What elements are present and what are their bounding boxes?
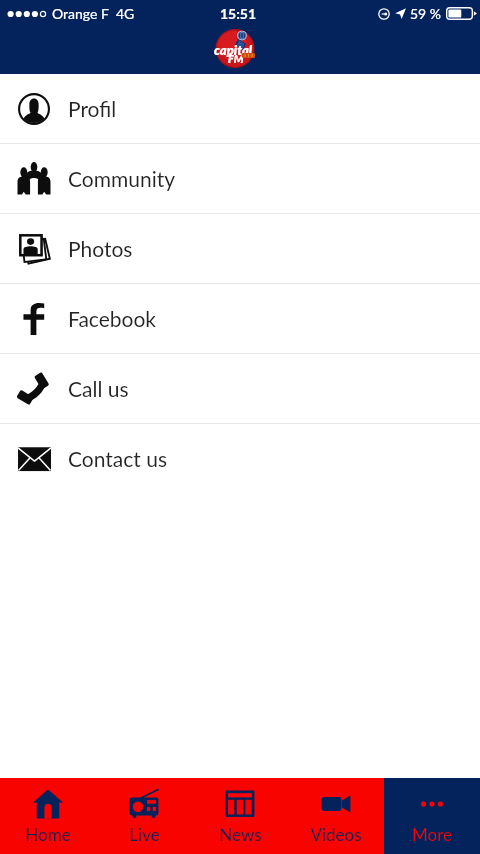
- staticText: Profil: [68, 96, 117, 121]
- button[interactable]: Videos: [288, 778, 384, 854]
- staticText: Contact us: [68, 446, 167, 471]
- button[interactable]: Call us: [0, 354, 480, 423]
- button[interactable]: More: [384, 778, 480, 854]
- staticText: Photos: [68, 236, 133, 261]
- button[interactable]: Home: [0, 778, 96, 854]
- button[interactable]: Live: [96, 778, 192, 854]
- button[interactable]: Profil: [0, 74, 480, 143]
- staticText: Community: [68, 166, 176, 191]
- button[interactable]: Facebook: [0, 284, 480, 353]
- staticText: More: [412, 824, 452, 844]
- button[interactable]: Contact us: [0, 424, 480, 493]
- staticText: Home: [25, 824, 71, 844]
- staticText: capital: [214, 42, 253, 58]
- staticText: Videos: [310, 824, 362, 844]
- button[interactable]: Community: [0, 144, 480, 213]
- staticText: Orange F: [52, 5, 109, 22]
- staticText: Facebook: [68, 306, 156, 331]
- staticText: 4G: [116, 5, 135, 22]
- staticText: 15:51: [220, 5, 257, 22]
- staticText: Call us: [68, 376, 129, 401]
- button[interactable]: Capital FM home: [214, 28, 260, 70]
- button[interactable]: News: [192, 778, 288, 854]
- staticText: Live: [129, 824, 160, 844]
- button[interactable]: Photos: [0, 214, 480, 283]
- staticText: News: [219, 824, 262, 844]
- staticText: FM: [228, 52, 244, 65]
- staticText: 59 %: [410, 5, 442, 22]
